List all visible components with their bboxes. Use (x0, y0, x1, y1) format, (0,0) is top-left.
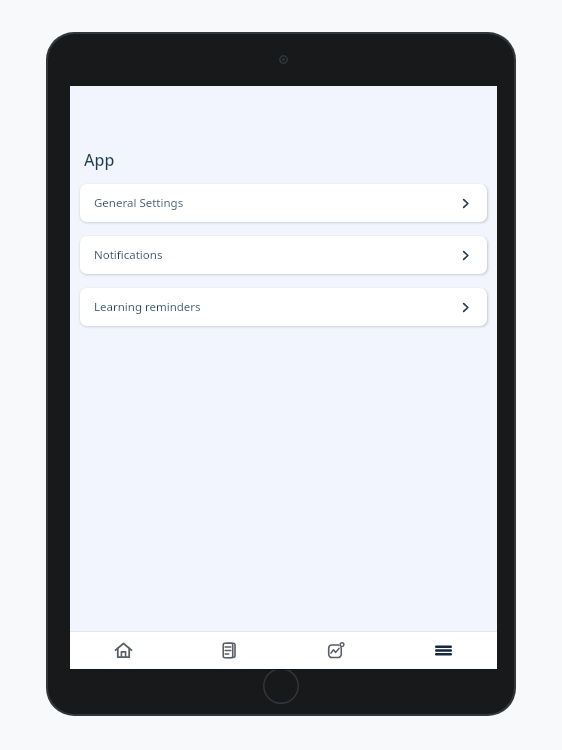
staticText: General Settings (94, 195, 184, 211)
staticText: Notifications (94, 247, 163, 263)
button[interactable]: General Settings (80, 184, 487, 222)
button[interactable]: Learning reminders (80, 288, 487, 326)
button[interactable]: Documents (176, 632, 283, 669)
button[interactable]: Menu (390, 632, 497, 669)
staticText: Learning reminders (94, 299, 201, 315)
button[interactable]: Home (70, 632, 176, 669)
staticText: App (84, 149, 115, 171)
button[interactable]: Progress (283, 632, 390, 669)
button[interactable]: Notifications (80, 236, 487, 274)
